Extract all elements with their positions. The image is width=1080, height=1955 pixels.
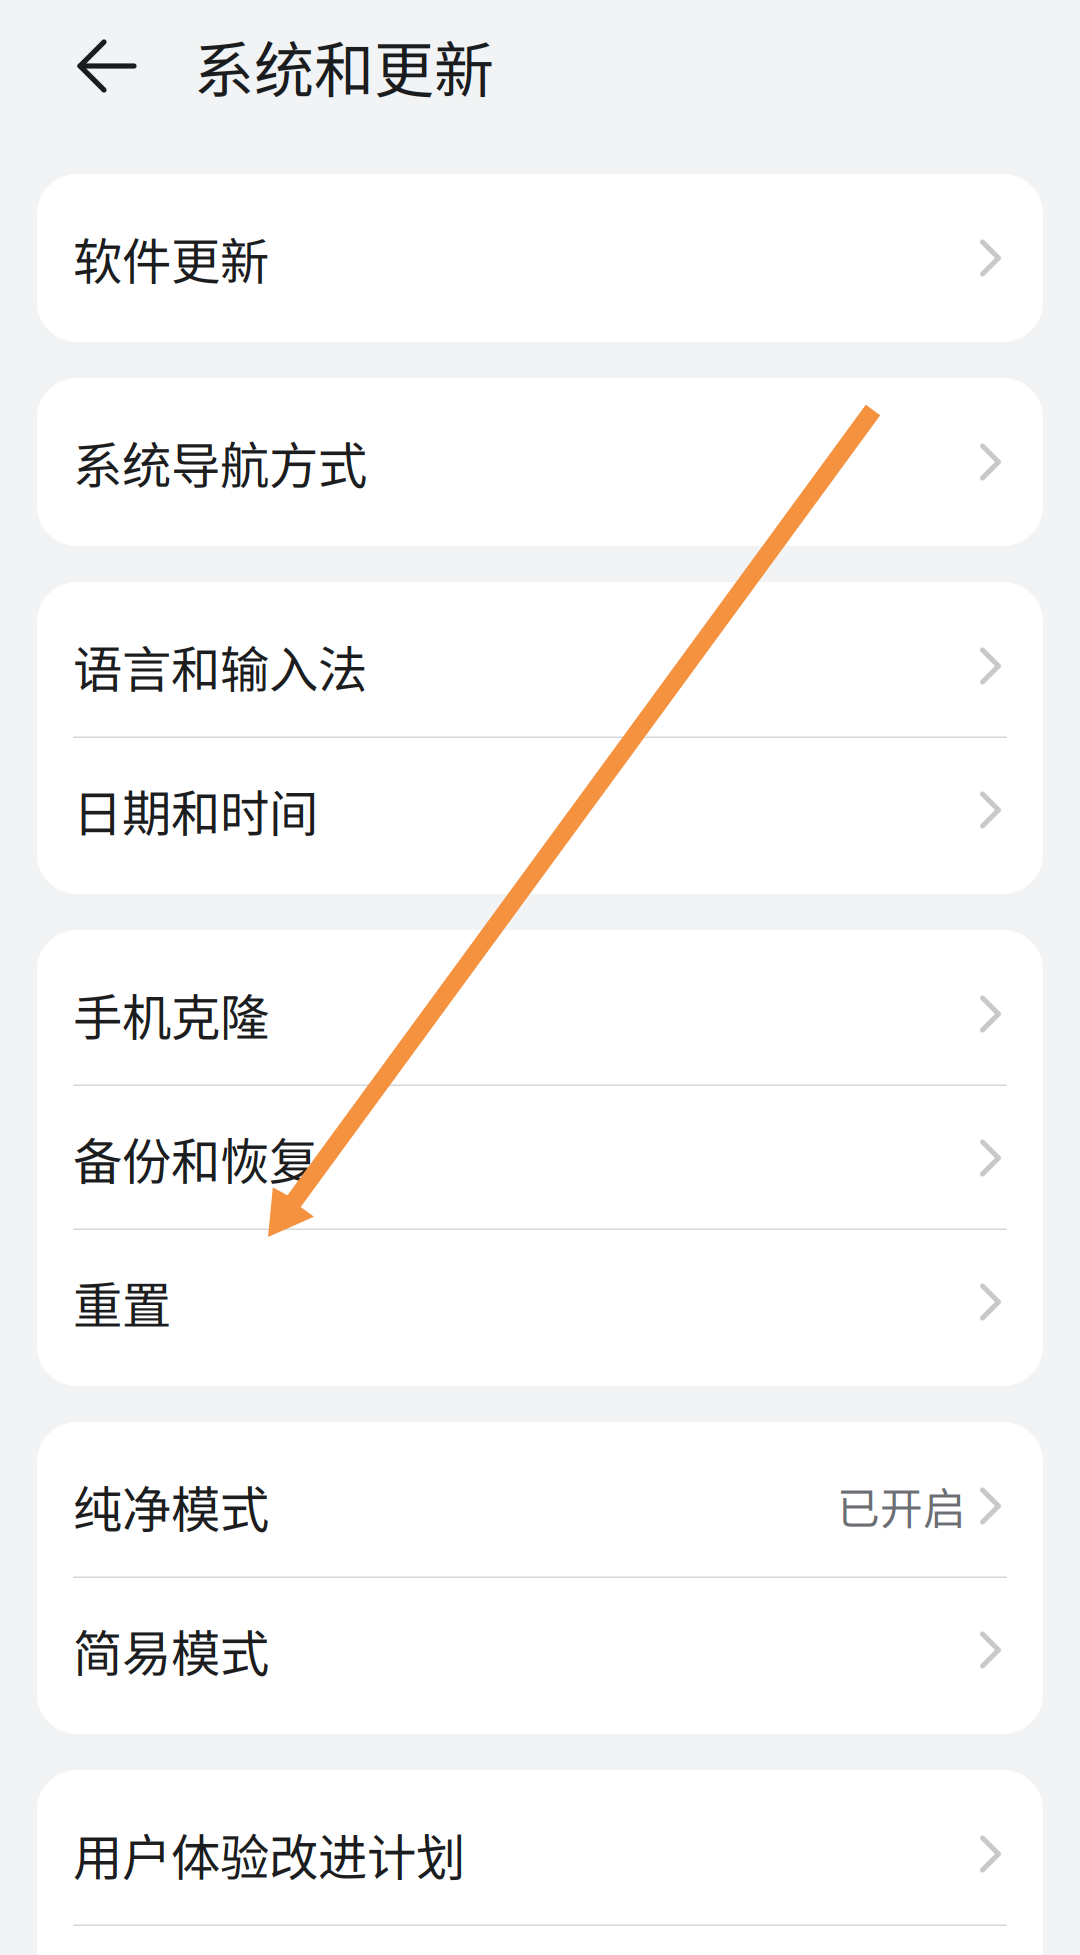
staticText: 已开启 xyxy=(837,1475,966,1537)
button[interactable]: 日期和时间 xyxy=(37,738,1043,882)
button[interactable]: 语言和输入法 xyxy=(37,594,1043,738)
button[interactable]: 软件更新 xyxy=(37,186,1043,330)
button[interactable]: 手机克隆 xyxy=(37,942,1043,1086)
staticText: 日期和时间 xyxy=(73,774,318,846)
button[interactable]: 系统导航方式 xyxy=(37,390,1043,534)
staticText: 手机克隆 xyxy=(73,978,269,1050)
button[interactable]: 纯净模式 xyxy=(37,1434,1043,1578)
button[interactable]: 简易模式 xyxy=(37,1578,1043,1722)
staticText: 重置 xyxy=(73,1266,171,1338)
staticText: 简易模式 xyxy=(73,1614,269,1686)
staticText: 系统和更新 xyxy=(194,23,494,109)
button[interactable]: Back xyxy=(51,0,163,132)
button[interactable]: 用户体验改进计划 xyxy=(37,1782,1043,1926)
staticText: 备份和恢复 xyxy=(73,1122,318,1194)
staticText: 纯净模式 xyxy=(73,1470,269,1542)
staticText: 语言和输入法 xyxy=(73,630,367,702)
staticText: 软件更新 xyxy=(73,222,269,294)
button[interactable]: 重置 xyxy=(37,1230,1043,1374)
button[interactable]: 备份和恢复 xyxy=(37,1086,1043,1230)
staticText: 用户体验改进计划 xyxy=(73,1818,465,1890)
staticText: 系统导航方式 xyxy=(73,426,367,498)
